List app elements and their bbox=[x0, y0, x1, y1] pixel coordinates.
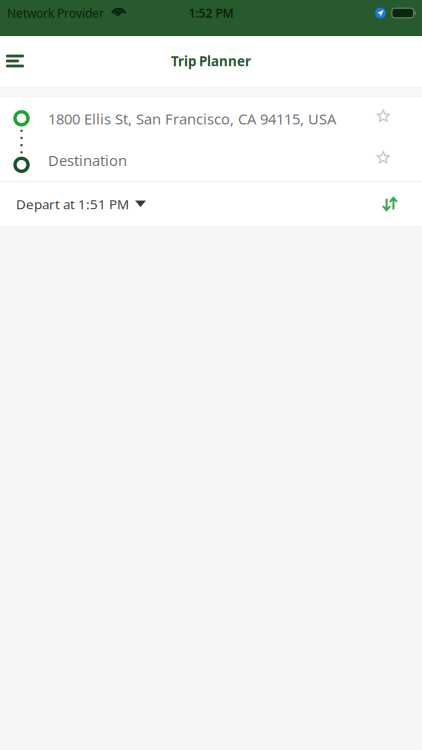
staticText: Destination bbox=[48, 150, 127, 170]
staticText: 1:52 PM bbox=[188, 5, 233, 21]
button[interactable]: Destination bbox=[0, 139, 422, 181]
button[interactable]: Swap origin and destination bbox=[366, 182, 414, 226]
staticText: Network Provider bbox=[7, 5, 104, 21]
button[interactable]: Depart at 1:51 PM bbox=[0, 182, 156, 226]
staticText: 1800 Ellis St, San Francisco, CA 94115, … bbox=[48, 109, 336, 128]
button[interactable]: Menu bbox=[0, 36, 44, 86]
button[interactable]: 1800 Ellis St, San Francisco, CA 94115, … bbox=[0, 98, 422, 139]
staticText: Depart at 1:51 PM bbox=[16, 195, 129, 213]
staticText: Trip Planner bbox=[171, 52, 251, 70]
